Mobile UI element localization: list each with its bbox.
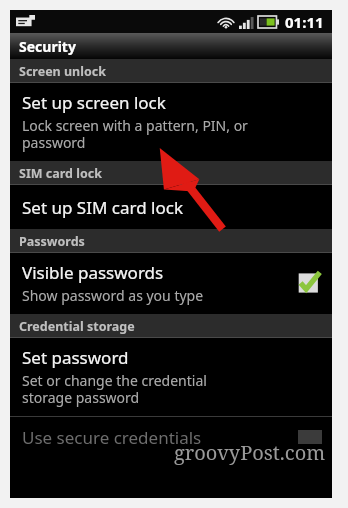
staticText: 01:11 xyxy=(285,12,324,32)
staticText: Show password as you type xyxy=(22,286,204,305)
staticText: SIM card lock xyxy=(19,165,102,182)
staticText: Passwords xyxy=(19,233,85,250)
button[interactable]: Visible passwords xyxy=(10,253,332,314)
button[interactable]: Set up screen lock xyxy=(10,83,332,161)
staticText: Set up SIM card lock xyxy=(22,196,183,219)
staticText: Lock screen with a pattern, PIN, or pass… xyxy=(22,116,248,152)
staticText: Security xyxy=(19,37,76,56)
staticText: Credential storage xyxy=(19,318,135,335)
staticText: Set or change the credential storage pas… xyxy=(22,371,207,407)
staticText: Use secure credentials xyxy=(22,426,298,449)
button[interactable]: Set up SIM card lock xyxy=(10,185,332,229)
staticText: Set password xyxy=(22,346,129,369)
staticText: Set up screen lock xyxy=(22,91,166,114)
other: Visible passwords checkbox xyxy=(296,270,322,296)
staticText: Screen unlock xyxy=(19,63,106,80)
staticText: groovyPost.com xyxy=(174,439,326,466)
button[interactable]: Set password xyxy=(10,338,332,416)
staticText: Visible passwords xyxy=(22,261,164,284)
